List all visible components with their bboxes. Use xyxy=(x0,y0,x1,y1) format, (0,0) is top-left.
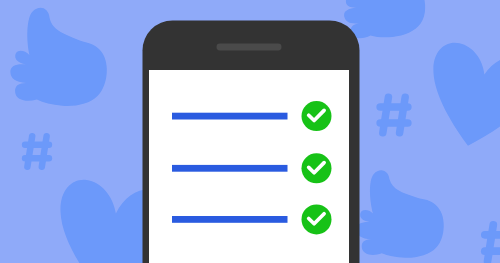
other: Checklist on phone promo xyxy=(0,0,500,263)
